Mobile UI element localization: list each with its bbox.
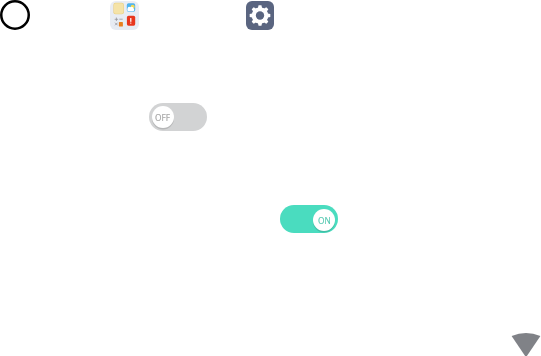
button[interactable]: Circle (0, 0, 30, 30)
staticText: OFF (155, 112, 171, 123)
button[interactable]: Settings (246, 1, 274, 30)
button[interactable]: Wifi (511, 333, 541, 356)
button[interactable]: OFF (149, 103, 207, 131)
staticText: ON (318, 215, 331, 226)
button[interactable]: ON (280, 205, 338, 233)
button[interactable]: Apps folder (110, 1, 139, 30)
